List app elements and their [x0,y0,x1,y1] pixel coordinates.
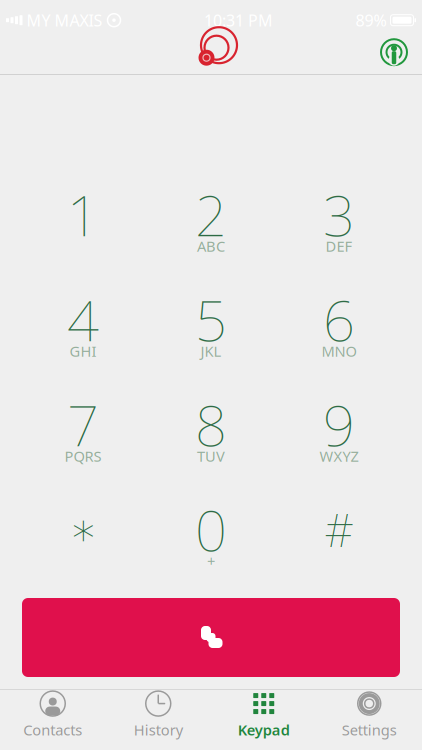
button[interactable]: Contacts [0,690,105,740]
button[interactable]: 6 [277,284,401,370]
staticText: GHI [69,341,96,361]
staticText: 4 [67,282,99,357]
button[interactable]: 0 [149,494,273,580]
button[interactable]: Broadcast [372,30,416,74]
button[interactable]: Keypad [211,690,316,740]
staticText: MY MAXIS [22,10,102,31]
staticText: 10:31 PM [204,10,273,31]
button[interactable]: 7 [21,389,145,475]
button[interactable]: 8 [149,389,273,475]
button[interactable]: 2 [149,179,273,265]
staticText: Keypad [238,720,290,740]
staticText: DEF [325,236,352,256]
staticText: ∗ [69,504,97,555]
staticText: TUV [197,446,225,466]
staticText: 0 [195,492,227,567]
button[interactable]: History [105,690,211,740]
staticText [81,236,85,256]
staticText: History [134,720,183,740]
button[interactable]: Call [22,598,400,677]
staticText: 9 [323,387,355,462]
staticText: Contacts [23,720,82,740]
button[interactable]: 3 [277,179,401,265]
staticText: 89% [355,10,386,31]
staticText: + [207,551,215,571]
staticText: JKL [200,341,221,361]
staticText: 6 [323,282,355,357]
staticText: 2 [195,177,227,252]
button[interactable]: 4 [21,284,145,370]
staticText: 7 [67,387,99,462]
button[interactable]: ∗ [21,494,145,580]
staticText: MNO [321,341,356,361]
staticText: 3 [323,177,355,252]
staticText: 5 [195,282,227,357]
staticText: 1 [67,177,99,252]
staticText: Settings [342,720,397,740]
staticText: 8 [195,387,227,462]
staticText: WXYZ [319,446,358,466]
staticText: ABC [197,236,225,256]
button[interactable]: 5 [149,284,273,370]
button[interactable]: Settings [316,690,422,740]
button[interactable]: # [277,494,401,580]
button[interactable]: 9 [277,389,401,475]
staticText: PQRS [64,446,101,466]
staticText: # [324,499,353,560]
button[interactable]: 1 [21,179,145,265]
